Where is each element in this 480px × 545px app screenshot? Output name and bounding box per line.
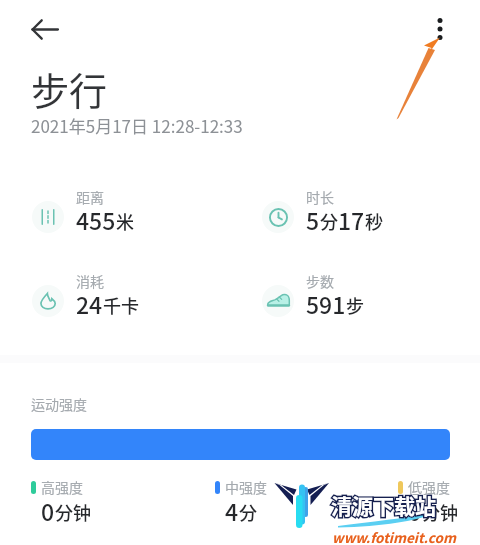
staticText: 时长 — [306, 187, 334, 207]
staticText: 清源下载站 — [331, 490, 436, 520]
staticText: www.fotimeit.com — [332, 527, 456, 545]
staticText: 千卡 — [103, 292, 139, 318]
staticText: 455 — [76, 203, 116, 236]
staticText: 秒 — [365, 208, 383, 234]
staticText: 低强度 — [408, 477, 450, 497]
button[interactable]: 中强度 — [215, 477, 267, 530]
staticText: 5 — [306, 203, 320, 236]
staticText: 分钟 — [422, 499, 458, 525]
staticText: 米 — [116, 208, 134, 234]
button[interactable]: 时长 — [262, 187, 383, 240]
staticText: 分钟 — [55, 499, 91, 525]
staticText: 高强度 — [41, 477, 83, 497]
staticText: 消耗 — [76, 271, 104, 291]
button[interactable] — [31, 429, 450, 460]
staticText: 距离 — [76, 187, 104, 207]
staticText: 17 — [338, 203, 365, 236]
button[interactable]: 步数 — [262, 271, 364, 324]
staticText: 步数 — [306, 271, 334, 291]
staticText: 中强度 — [225, 477, 267, 497]
staticText: 2021年5月17日 12:28-12:33 — [31, 113, 243, 138]
button[interactable]: Back — [23, 7, 68, 52]
button[interactable]: 距离 — [32, 187, 134, 240]
staticText: 24 — [76, 287, 103, 320]
staticText: 步行 — [31, 61, 108, 116]
button[interactable]: 高强度 — [31, 477, 83, 530]
button[interactable]: 消耗 — [32, 271, 139, 324]
staticText: 4 — [225, 494, 239, 527]
staticText: 591 — [306, 287, 346, 320]
staticText: 清源下载站 — [331, 490, 436, 520]
staticText: 0 — [41, 494, 55, 527]
staticText: 运动强度 — [31, 394, 87, 414]
staticText: 分 — [239, 499, 257, 525]
button[interactable]: More options — [417, 6, 462, 51]
staticText: 0 — [408, 494, 422, 527]
button[interactable]: 低强度 — [398, 477, 450, 530]
staticText: 分 — [320, 208, 338, 234]
staticText: 步 — [346, 292, 364, 318]
